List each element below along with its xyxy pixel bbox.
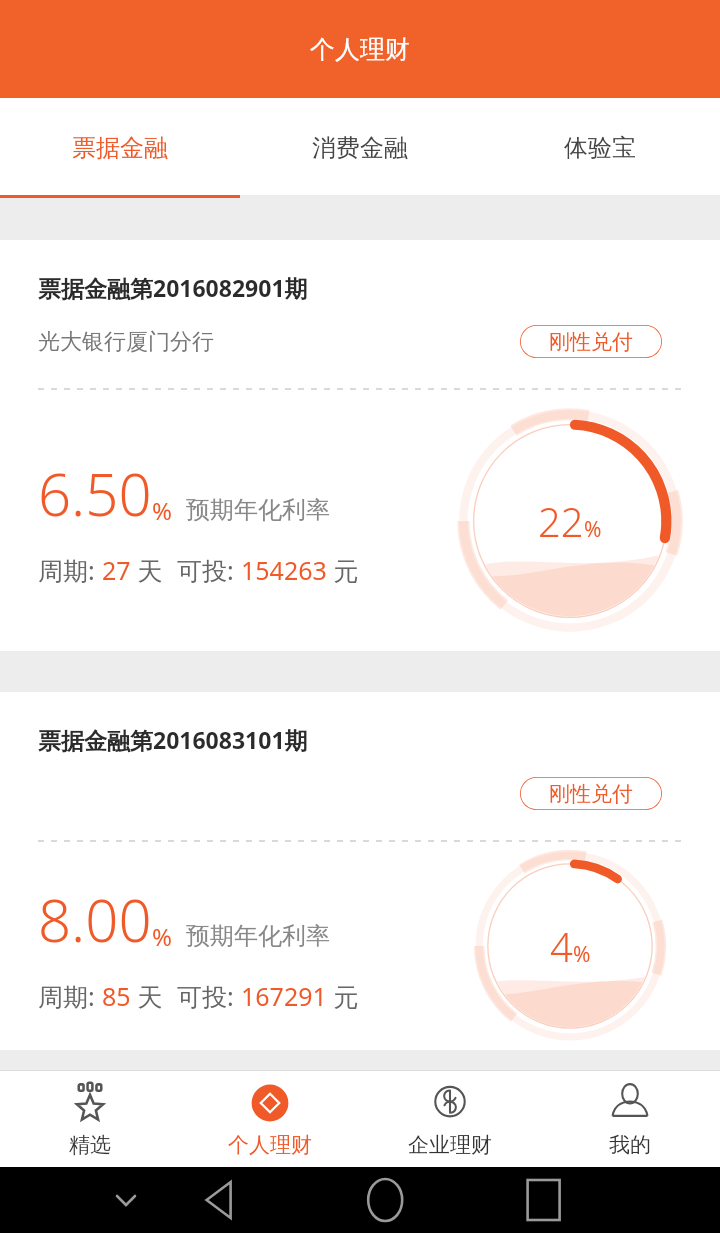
button[interactable]: 企业理财 bbox=[360, 1070, 540, 1167]
button[interactable]: 票据金融第2016083101期 bbox=[0, 692, 720, 1050]
staticText: 企业理财 bbox=[408, 1132, 492, 1158]
button[interactable]: 票据金融第2016082901期 bbox=[0, 240, 720, 651]
staticText: 个人理财 bbox=[228, 1132, 312, 1158]
staticText: 85 bbox=[102, 979, 131, 1013]
staticText: 预期年化利率 bbox=[186, 921, 330, 951]
staticText: 22 bbox=[538, 494, 584, 548]
staticText: 167291 bbox=[241, 979, 327, 1013]
staticText: % bbox=[152, 920, 172, 953]
button[interactable]: 体验宝 bbox=[480, 98, 720, 198]
staticText: 可投: bbox=[177, 553, 241, 587]
staticText: 票据金融 bbox=[72, 133, 168, 163]
button[interactable]: 票据金融 bbox=[0, 98, 240, 198]
staticText: 4 bbox=[550, 919, 573, 973]
staticText: 154263 bbox=[241, 553, 327, 587]
staticText: 光大银行厦门分行 bbox=[38, 328, 214, 356]
staticText: 票据金融第2016083101期 bbox=[38, 724, 308, 755]
button[interactable]: 个人理财 bbox=[180, 1070, 360, 1167]
staticText: 元 bbox=[327, 553, 359, 587]
staticText: 天 bbox=[131, 553, 163, 587]
staticText: 个人理财 bbox=[310, 34, 410, 65]
staticText: % bbox=[573, 940, 591, 969]
staticText: 精选 bbox=[69, 1132, 111, 1158]
staticText: 刚性兑付 bbox=[549, 781, 633, 807]
button[interactable]: 刚性兑付 bbox=[520, 777, 662, 810]
staticText: 27 bbox=[102, 553, 131, 587]
staticText: % bbox=[152, 494, 172, 527]
staticText: 周期: bbox=[38, 979, 102, 1013]
button[interactable]: 刚性兑付 bbox=[520, 325, 662, 358]
staticText: 体验宝 bbox=[564, 133, 636, 163]
button[interactable]: 我的 bbox=[540, 1070, 720, 1167]
staticText: 预期年化利率 bbox=[186, 495, 330, 525]
staticText: 天 bbox=[131, 979, 163, 1013]
staticText: % bbox=[584, 515, 602, 544]
staticText: 消费金融 bbox=[312, 133, 408, 163]
staticText: 我的 bbox=[609, 1132, 651, 1158]
staticText: 元 bbox=[327, 979, 359, 1013]
staticText: 6.50 bbox=[38, 454, 152, 533]
button[interactable]: 消费金融 bbox=[240, 98, 480, 198]
staticText: 票据金融第2016082901期 bbox=[38, 272, 308, 303]
staticText: 周期: bbox=[38, 553, 102, 587]
button[interactable]: 精选 bbox=[0, 1070, 180, 1167]
staticText: 可投: bbox=[177, 979, 241, 1013]
staticText: 8.00 bbox=[38, 880, 152, 959]
staticText: 刚性兑付 bbox=[549, 329, 633, 355]
